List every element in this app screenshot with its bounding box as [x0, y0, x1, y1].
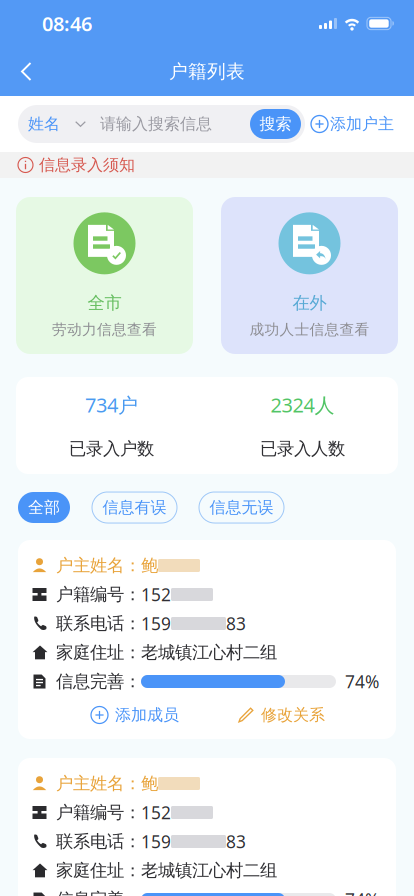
staticText: 734户 — [85, 392, 138, 418]
button[interactable]: 搜索 — [250, 109, 301, 139]
button[interactable]: 添加户主 — [305, 105, 398, 143]
staticText: 152 — [141, 801, 171, 824]
button[interactable]: 姓名 — [18, 105, 100, 143]
staticText: 户籍编号： — [56, 802, 141, 823]
staticText: 姓名 — [28, 114, 60, 134]
staticText: 添加成员 — [115, 705, 179, 725]
staticText: 劳动力信息查看 — [52, 321, 157, 339]
staticText: 152 — [141, 583, 171, 606]
staticText: 159 — [141, 830, 171, 853]
staticText: 请输入搜索信息 — [100, 114, 212, 134]
button[interactable]: 信息无误 — [199, 492, 284, 523]
staticText: 159 — [141, 612, 171, 635]
staticText: 信息完善： — [56, 671, 141, 692]
staticText: 全部 — [28, 498, 60, 517]
staticText: 户籍列表 — [169, 60, 245, 83]
staticText: 鲍 — [141, 773, 158, 794]
staticText: 在外 — [292, 292, 326, 314]
staticText: 信息无误 — [209, 498, 273, 517]
staticText: 老城镇江心村二组 — [141, 642, 277, 663]
button[interactable]: 添加成员 — [91, 696, 179, 734]
button[interactable]: 修改关系 — [238, 696, 325, 734]
staticText: 74% — [345, 888, 379, 896]
staticText: 74% — [345, 670, 379, 693]
button[interactable]: 在外 — [221, 197, 398, 354]
button[interactable]: 全市 — [16, 197, 193, 354]
staticText: 已录入人数 — [260, 438, 345, 459]
staticText: 已录入户数 — [69, 438, 154, 459]
staticText: 户主姓名： — [56, 555, 141, 576]
staticText: 家庭住址： — [56, 860, 141, 881]
staticText: 全市 — [87, 292, 121, 314]
button[interactable]: 返回 — [8, 49, 45, 93]
staticText: 户籍编号： — [56, 584, 141, 605]
staticText: 2324人 — [270, 392, 334, 418]
staticText: 信息完善： — [56, 889, 141, 896]
staticText: 修改关系 — [261, 705, 325, 725]
button[interactable]: 信息录入须知 — [0, 152, 135, 178]
staticText: 联系电话： — [56, 831, 141, 852]
button[interactable]: 全部 — [18, 492, 70, 523]
staticText: 联系电话： — [56, 613, 141, 634]
button[interactable]: 信息有误 — [92, 492, 177, 523]
staticText: 添加户主 — [330, 114, 394, 134]
staticText: 老城镇江心村二组 — [141, 860, 277, 881]
staticText: 鲍 — [141, 555, 158, 576]
staticText: 户主姓名： — [56, 773, 141, 794]
staticText: 08:46 — [42, 10, 92, 37]
staticText: 家庭住址： — [56, 642, 141, 663]
staticText: 信息有误 — [102, 498, 166, 517]
staticText: 成功人士信息查看 — [249, 321, 369, 339]
staticText: 83 — [226, 830, 246, 853]
staticText: 信息录入须知 — [39, 155, 135, 175]
staticText: 83 — [226, 612, 246, 635]
staticText: 搜索 — [259, 114, 291, 134]
